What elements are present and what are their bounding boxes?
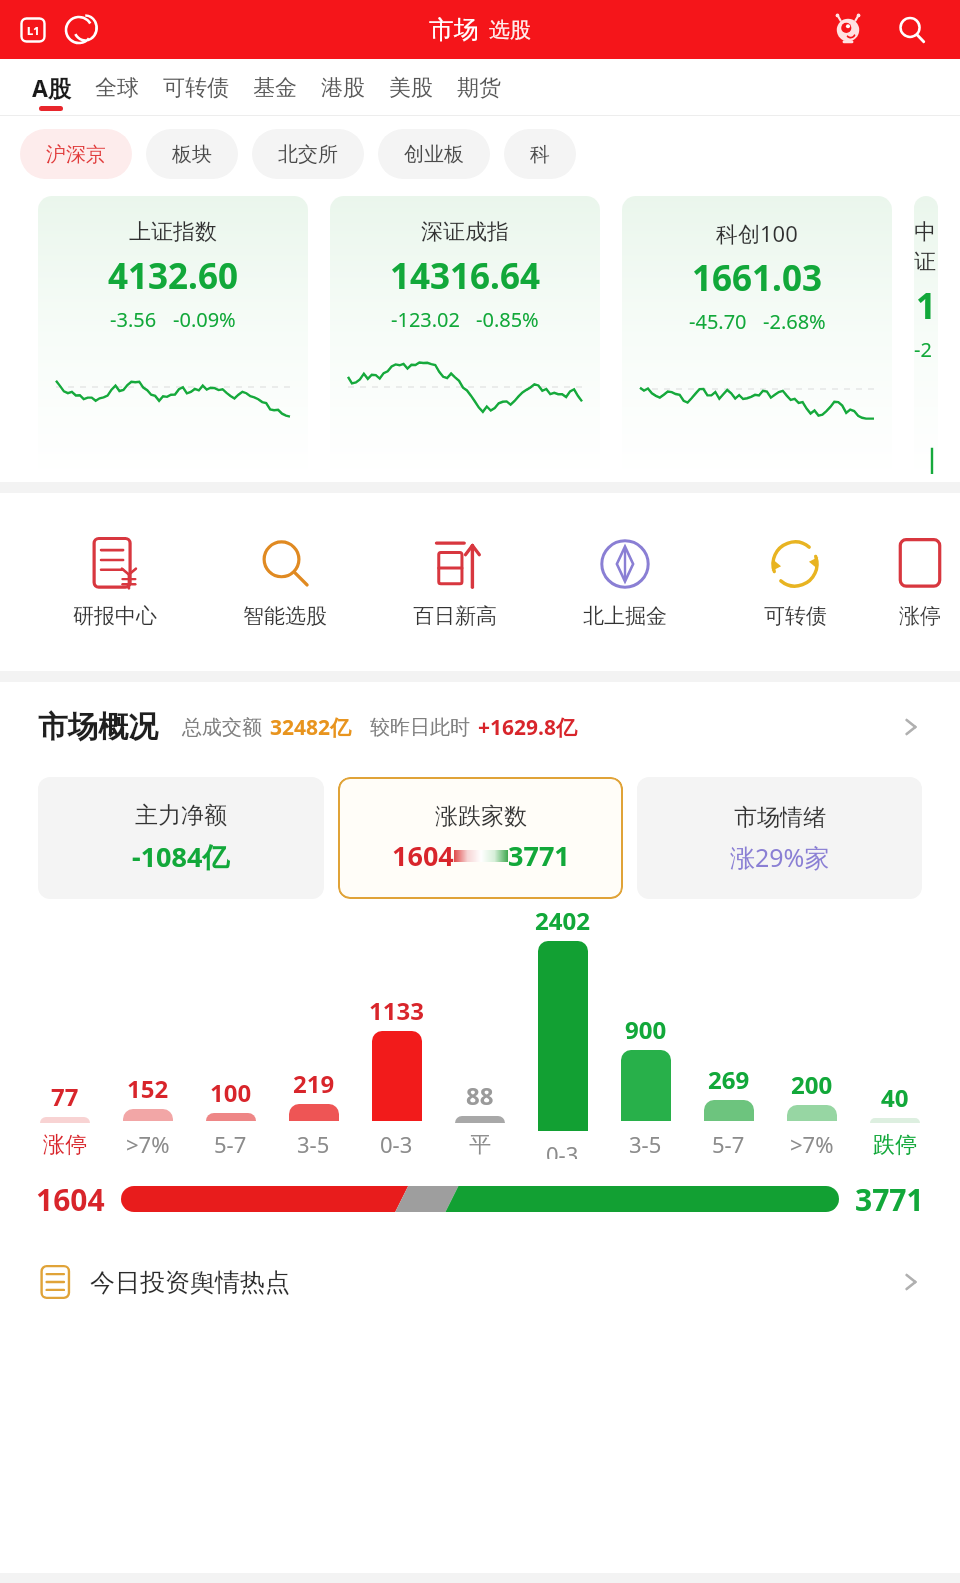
button[interactable]: 可转债 <box>151 59 241 116</box>
staticText: 涨跌家数 <box>435 802 527 831</box>
button[interactable]: Assistant <box>828 10 868 50</box>
staticText: -2.68% <box>763 308 826 335</box>
button[interactable]: 全球 <box>83 59 151 116</box>
staticText: -123.02 <box>391 306 460 333</box>
button[interactable]: 涨停 <box>880 535 960 629</box>
staticText: 涨29%家 <box>730 840 830 874</box>
staticText: 全球 <box>95 74 139 102</box>
staticText: 上证指数 <box>129 218 217 246</box>
staticText: -3.56 <box>110 306 157 333</box>
staticText: 市场 <box>429 14 479 45</box>
button[interactable]: 北上掘金 <box>540 535 710 629</box>
staticText: 中证 <box>914 218 938 276</box>
button[interactable]: 深证成指 <box>330 196 600 478</box>
button[interactable]: 期货 <box>445 59 513 116</box>
staticText: 港股 <box>321 74 365 102</box>
staticText: 3-5 <box>297 1129 330 1159</box>
staticText: 涨停 <box>43 1131 87 1159</box>
staticText: 1133 <box>369 994 424 1027</box>
button[interactable]: 沪深京 <box>20 129 132 179</box>
button[interactable]: 研报中心 <box>30 535 200 629</box>
staticText: 选股 <box>489 17 531 43</box>
staticText: 3771 <box>508 837 570 874</box>
staticText: -45.70 <box>689 308 747 335</box>
button[interactable]: 科 <box>504 129 576 179</box>
staticText: 32482亿 <box>270 713 352 742</box>
button[interactable]: 科创100 <box>622 196 892 478</box>
staticText: 5-7 <box>214 1129 247 1159</box>
button[interactable]: A股 <box>20 59 83 116</box>
staticText: 沪深京 <box>46 142 106 167</box>
staticText: 创业板 <box>404 142 464 167</box>
staticText: 900 <box>625 1013 667 1046</box>
staticText: 1604 <box>392 837 454 874</box>
staticText: 平 <box>469 1131 491 1159</box>
staticText: 3-5 <box>629 1129 662 1159</box>
button[interactable]: 美股 <box>377 59 445 116</box>
staticText: 0-3 <box>380 1129 413 1159</box>
staticText: >7% <box>126 1129 170 1159</box>
staticText: 1 <box>916 282 937 330</box>
staticText: +1629.8亿 <box>478 713 577 742</box>
staticText: 智能选股 <box>243 603 327 629</box>
button[interactable]: 北交所 <box>252 129 364 179</box>
staticText: 百日新高 <box>413 603 497 629</box>
staticText: -1084亿 <box>132 838 230 875</box>
staticText: 可转债 <box>764 603 827 629</box>
staticText: 0-3 <box>546 1139 579 1159</box>
staticText: 88 <box>466 1079 494 1112</box>
staticText: 今日投资舆情热点 <box>90 1267 290 1298</box>
staticText: -2 <box>914 336 932 363</box>
staticText: 152 <box>127 1072 169 1105</box>
staticText: 市场情绪 <box>734 803 826 832</box>
button[interactable]: 板块 <box>146 129 238 179</box>
staticText: 研报中心 <box>73 603 157 629</box>
staticText: 269 <box>708 1063 750 1096</box>
staticText: 5-7 <box>712 1129 745 1159</box>
button[interactable]: 可转债 <box>710 535 880 629</box>
staticText: 4132.60 <box>108 252 238 300</box>
staticText: 科 <box>530 142 550 167</box>
button[interactable]: Night mode <box>62 13 96 47</box>
button[interactable]: 创业板 <box>378 129 490 179</box>
button[interactable]: 智能选股 <box>200 535 370 629</box>
staticText: 1661.03 <box>692 254 822 302</box>
button[interactable]: 市场情绪 <box>637 777 922 899</box>
staticText: 美股 <box>389 74 433 102</box>
button[interactable]: 上证指数 <box>38 196 308 478</box>
staticText: 较昨日此时 <box>370 715 470 740</box>
staticText: 板块 <box>172 142 212 167</box>
staticText: 200 <box>791 1068 833 1101</box>
staticText: 100 <box>210 1076 252 1109</box>
button[interactable]: 百日新高 <box>370 535 540 629</box>
button[interactable]: Level 1 quotes <box>18 15 48 45</box>
staticText: 深证成指 <box>421 218 509 246</box>
button[interactable]: 中证 <box>914 196 938 478</box>
staticText: -0.85% <box>476 306 539 333</box>
staticText: 40 <box>881 1081 909 1114</box>
staticText: 科创100 <box>716 218 798 248</box>
staticText: >7% <box>790 1129 834 1159</box>
button[interactable]: Search <box>892 10 932 50</box>
button[interactable]: 港股 <box>309 59 377 116</box>
staticText: 219 <box>293 1067 335 1100</box>
staticText: L1 <box>27 23 40 38</box>
button[interactable]: 今日投资舆情热点 <box>0 1239 960 1325</box>
staticText: 14316.64 <box>390 252 540 300</box>
staticText: 总成交额 <box>182 715 262 740</box>
staticText: 77 <box>51 1080 79 1113</box>
staticText: A股 <box>32 72 71 103</box>
staticText: -0.09% <box>173 306 236 333</box>
staticText: 北交所 <box>278 142 338 167</box>
button[interactable]: 涨跌家数 <box>338 777 623 899</box>
button[interactable]: 市场概况 <box>0 682 960 772</box>
button[interactable]: 基金 <box>241 59 309 116</box>
staticText: 市场概况 <box>38 708 158 746</box>
staticText: 主力净额 <box>135 801 227 830</box>
button[interactable]: 主力净额 <box>38 777 324 899</box>
staticText: 北上掘金 <box>583 603 667 629</box>
staticText: 基金 <box>253 74 297 102</box>
staticText: 3771 <box>855 1179 924 1220</box>
staticText: 1604 <box>36 1179 105 1220</box>
staticText: 跌停 <box>873 1131 917 1159</box>
